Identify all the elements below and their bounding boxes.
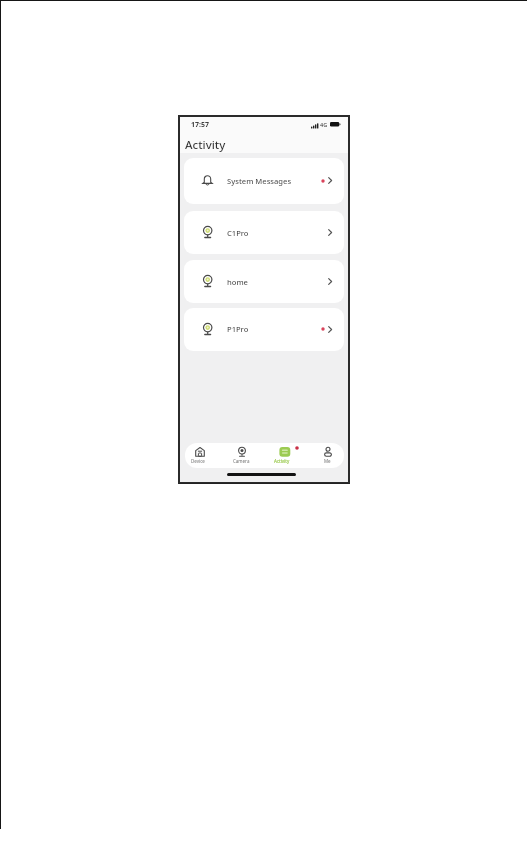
staticText: Device (191, 458, 205, 464)
staticText: System Messages (227, 176, 292, 186)
staticText: Activity (274, 458, 290, 464)
button[interactable]: Me (314, 445, 342, 466)
staticText: P1Pro (227, 324, 249, 334)
button[interactable]: Camera (228, 445, 256, 466)
button[interactable]: C1Pro (184, 211, 344, 254)
staticText: 17:57 (191, 120, 209, 130)
staticText: C1Pro (227, 228, 249, 238)
button[interactable]: P1Pro (184, 308, 344, 351)
staticText: Camera (233, 458, 250, 464)
staticText: home (227, 277, 248, 287)
staticText: Activity (185, 137, 226, 153)
staticText: 4G (320, 121, 328, 128)
staticText: Me (324, 458, 331, 464)
button[interactable]: Device (186, 445, 214, 466)
button[interactable]: Activity (271, 445, 299, 466)
button[interactable]: System Messages (184, 158, 344, 204)
button[interactable]: home (184, 260, 344, 303)
